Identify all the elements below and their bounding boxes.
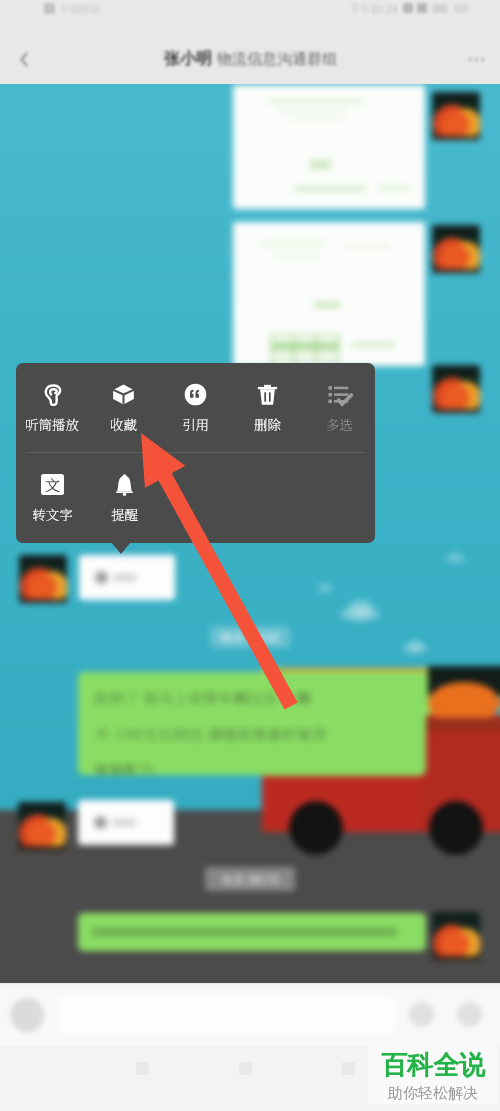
staticText: 文 bbox=[45, 474, 61, 495]
button[interactable]: 更多功能 bbox=[457, 1002, 482, 1027]
button[interactable]: 提醒 bbox=[88, 453, 160, 523]
staticText: 物流信息沟通群组 bbox=[217, 50, 337, 69]
button[interactable]: 引用 bbox=[159, 363, 231, 433]
staticText: 听筒播放 bbox=[25, 414, 79, 433]
staticText: 中国移动 bbox=[60, 1, 100, 15]
button[interactable]: 更多 bbox=[456, 39, 496, 79]
button[interactable]: 文 bbox=[16, 453, 88, 523]
staticText: 提醒 bbox=[111, 504, 138, 523]
button[interactable]: 返回 bbox=[120, 1046, 164, 1090]
button[interactable]: 主页 bbox=[223, 1046, 267, 1090]
button[interactable]: 最近任务 bbox=[326, 1046, 370, 1090]
button[interactable]: 返回 bbox=[4, 39, 44, 79]
button[interactable]: 收藏 bbox=[87, 363, 159, 433]
button[interactable]: 删除 bbox=[231, 363, 303, 433]
staticText: 引用 bbox=[182, 414, 209, 433]
staticText: 转文字 bbox=[32, 504, 73, 523]
staticText: 百科全说 bbox=[381, 1049, 485, 1082]
staticText: 删除 bbox=[254, 414, 281, 433]
staticText: 收藏 bbox=[110, 414, 137, 433]
button[interactable]: 多选 bbox=[303, 363, 375, 433]
staticText: 下午10:24 bbox=[349, 0, 398, 16]
button[interactable]: 表情 bbox=[409, 1002, 434, 1027]
staticText: 谢谢配合 bbox=[94, 759, 155, 775]
staticText: 今天 09:15 bbox=[221, 871, 279, 887]
staticText: 半 小时左右到达 请提前准备好装货 bbox=[94, 723, 327, 745]
staticText: 收到了 我马上安排车辆过去 大概 bbox=[94, 687, 312, 709]
staticText: 多选 bbox=[326, 414, 353, 433]
staticText: 张小明 bbox=[164, 49, 212, 69]
staticText: 助你轻松解决 bbox=[388, 1084, 478, 1103]
staticText: 昨天 14:32 bbox=[221, 629, 279, 645]
button[interactable]: 语音输入 bbox=[10, 998, 44, 1032]
button[interactable]: 听筒播放 bbox=[16, 363, 87, 433]
